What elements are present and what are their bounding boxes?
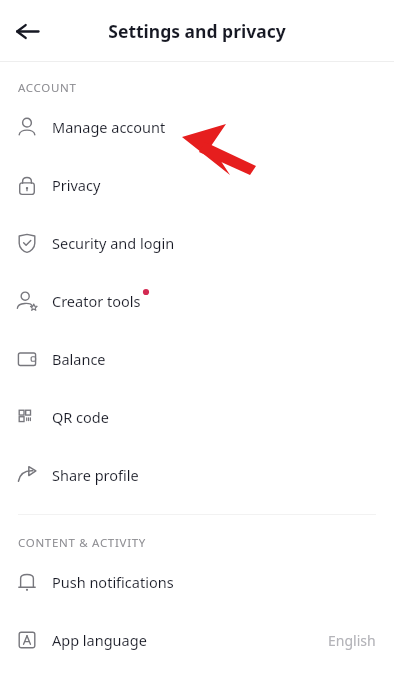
staticText: Security and login [52,233,175,253]
staticText: CONTENT & ACTIVITY [18,535,147,551]
staticText: Balance [52,349,106,369]
button[interactable]: QR code [0,388,394,446]
staticText: Privacy [52,175,101,195]
staticText: App language [52,630,147,650]
button[interactable]: Privacy [0,156,394,214]
button[interactable]: App language [0,611,394,669]
button[interactable]: Security and login [0,214,394,272]
staticText: QR code [52,407,109,427]
button[interactable]: Back [9,13,45,49]
button[interactable]: Push notifications [0,553,394,611]
staticText: Push notifications [52,572,174,592]
button[interactable]: Balance [0,330,394,388]
staticText: Settings and privacy [108,19,286,43]
staticText: Manage account [52,117,166,137]
staticText: Creator tools [52,291,141,311]
button[interactable]: Creator tools [0,272,394,330]
staticText: English [328,631,376,650]
staticText: ACCOUNT [18,80,77,96]
button[interactable]: Share profile [0,446,394,504]
button[interactable]: Manage account [0,98,394,156]
staticText: Share profile [52,465,139,485]
